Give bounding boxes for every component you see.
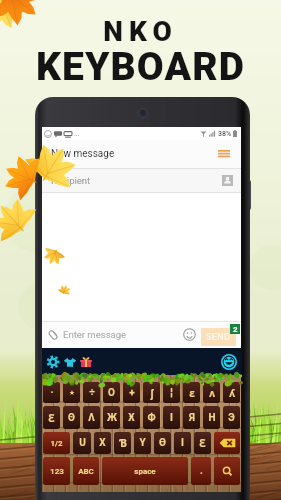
staticText: New message [51,148,115,160]
button[interactable]: Choose contact [222,175,233,186]
staticText: 123 [50,467,64,476]
staticText: + [129,387,135,399]
button[interactable]: Ɓ [114,432,131,454]
staticText: Ү [139,437,146,449]
staticText: NKO [103,15,178,48]
button[interactable]: Ɛ [43,406,60,429]
staticText: ٭ [69,387,75,399]
staticText: space [134,467,156,476]
button[interactable]: Attach file [47,329,59,341]
staticText: Ө [159,437,166,449]
staticText: Э [228,412,235,424]
staticText: I [181,437,184,449]
button[interactable]: I [163,406,180,429]
staticText: X [99,437,106,449]
button[interactable]: . [191,457,211,485]
button[interactable]: Θ [63,406,80,429]
button[interactable]: X [94,432,111,454]
staticText: Λ [88,412,95,424]
button[interactable]: O [103,382,120,403]
staticText: Ӿ [128,412,135,424]
staticText: Enter message [63,329,127,340]
button[interactable]: · [43,382,60,403]
button[interactable]: SEND [201,328,236,346]
button[interactable]: Ө [154,432,171,454]
button[interactable]: Λ [83,406,100,429]
button[interactable]: Ɛ [194,432,211,454]
button[interactable]: 123 [43,457,70,485]
button[interactable]: Ф [143,406,160,429]
button[interactable]: Settings [46,355,60,369]
button[interactable]: Ү [134,432,151,454]
button[interactable]: Н [203,406,220,429]
button[interactable]: Emoji keyboard [221,354,237,370]
staticText: Ɛ [199,436,206,450]
staticText: Θ [68,412,75,424]
staticText: ʌ [209,386,215,400]
staticText: Ф [147,412,156,424]
staticText: ¦ [170,387,173,399]
button[interactable]: I [174,432,191,454]
button[interactable]: Insert emoji [183,328,196,341]
staticText: I [170,412,173,424]
staticText: . [200,465,203,477]
staticText: ʃ [150,386,154,400]
staticText: ÷ [89,387,95,399]
button[interactable]: ٭ [63,382,80,403]
button[interactable]: ʌ [203,382,220,403]
button[interactable]: ʎ [223,382,240,403]
button[interactable]: ABC [73,457,99,485]
button[interactable]: Backspace [214,432,240,454]
button[interactable]: Search [214,457,240,485]
button[interactable]: space [102,457,188,485]
button[interactable]: ʃ [143,382,160,403]
staticText: Ж [107,412,117,424]
staticText: SEND [206,332,231,343]
staticText: Ɛ [48,411,55,425]
button[interactable]: Gift [79,355,93,369]
button[interactable]: Я [183,406,200,429]
staticText: ... [74,130,80,138]
button[interactable]: Menu [216,146,232,162]
button[interactable]: + [123,382,140,403]
staticText: · [50,387,54,399]
button[interactable]: Themes [63,355,77,369]
staticText: KEYBOARD [36,44,245,90]
button[interactable]: ¦ [163,382,180,403]
staticText: O [108,387,115,399]
button[interactable]: 1/2 [43,432,70,454]
button[interactable]: Э [223,406,240,429]
button[interactable]: Recipient [42,168,241,193]
staticText: 2 [233,325,238,334]
staticText: ABC [78,467,94,476]
staticText: 1/2 [50,439,63,448]
staticText: Recipient [51,175,91,186]
staticText: 38% [218,130,232,138]
button[interactable]: ɛ [183,382,200,403]
staticText: Н [208,412,216,424]
button[interactable]: U [73,432,91,454]
button[interactable]: New message [42,140,241,168]
button[interactable]: ÷ [83,382,100,403]
staticText: Я [189,412,195,424]
staticText: U [79,437,86,449]
button[interactable]: Ӿ [123,406,140,429]
button[interactable]: Ж [103,406,120,429]
staticText: ɛ [189,386,195,400]
staticText: Ɓ [119,436,127,450]
staticText: ʎ [229,386,235,400]
